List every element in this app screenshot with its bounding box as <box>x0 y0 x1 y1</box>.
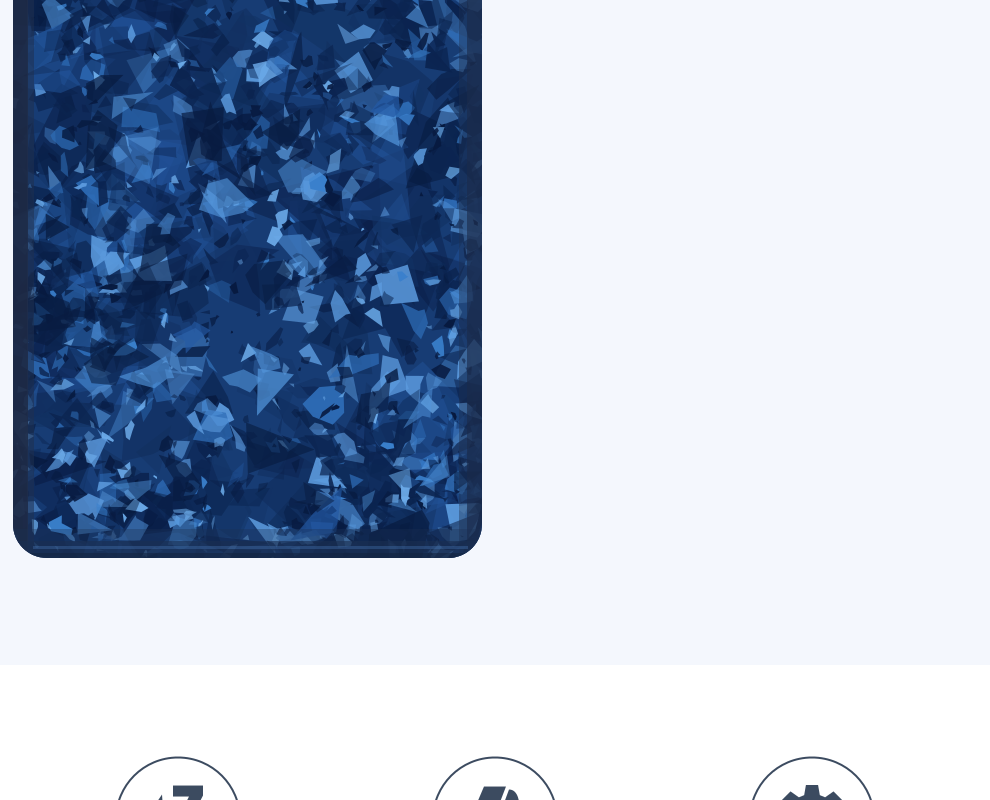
button[interactable]: Drop protection <box>336 752 653 800</box>
button[interactable]: Wireless charging <box>19 752 336 800</box>
button[interactable]: Precision fit <box>653 752 970 800</box>
